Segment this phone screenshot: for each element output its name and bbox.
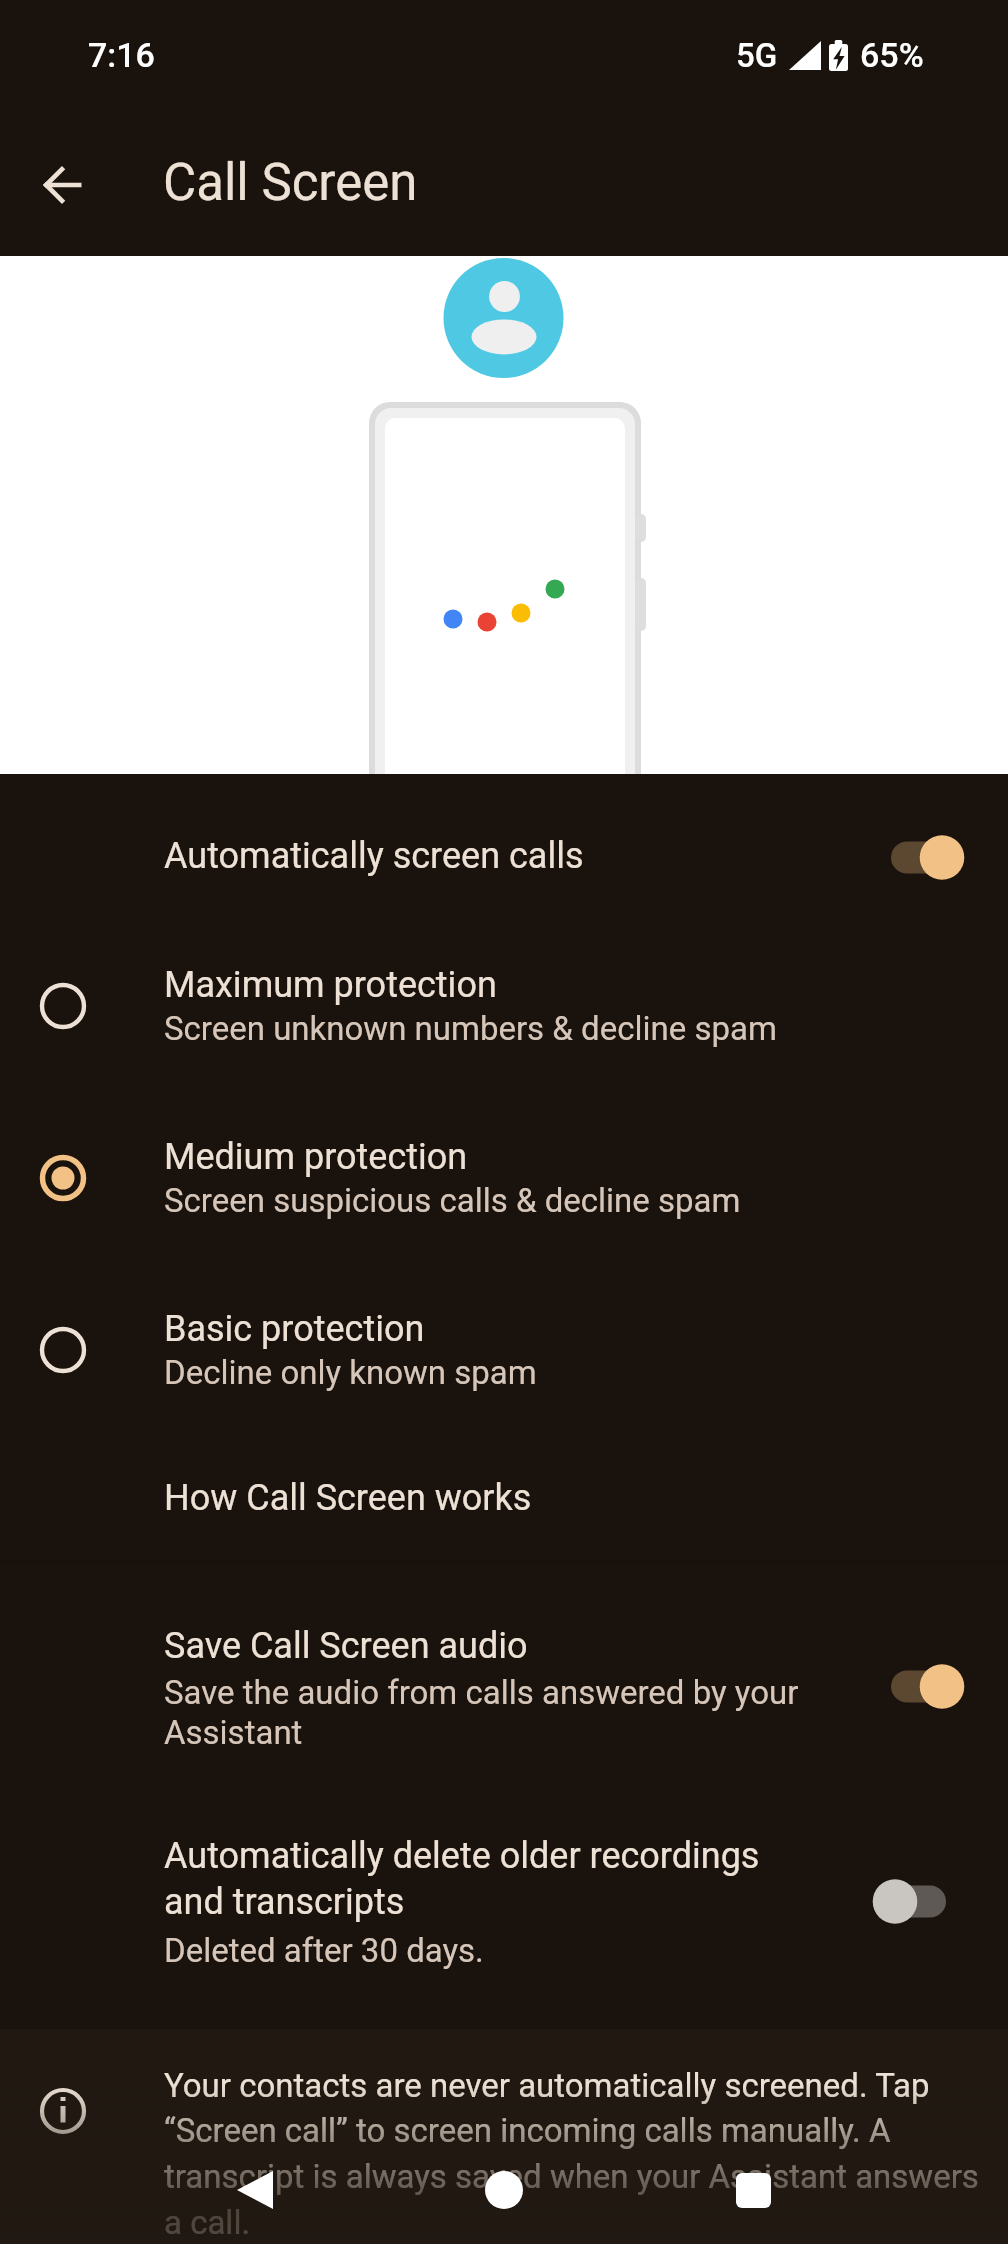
button[interactable]: Maximum protection (0, 938, 1008, 1098)
button[interactable]: Automatically delete older recordings an… (0, 1794, 1008, 2004)
button[interactable]: Back (18, 140, 108, 230)
staticText: Save Call Screen audio (164, 1625, 528, 1667)
button[interactable]: Recent apps (698, 2135, 808, 2244)
staticText: Save the audio from calls answered by yo… (164, 1673, 824, 1752)
button[interactable]: Back (200, 2135, 310, 2244)
button[interactable]: Medium protection (0, 1110, 1008, 1270)
staticText: How Call Screen works (164, 1477, 532, 1519)
staticText: Call Screen (163, 153, 418, 213)
button[interactable]: Automatically screen calls (0, 794, 1008, 918)
staticText: 7:16 (88, 35, 155, 75)
staticText: Basic protection (164, 1308, 425, 1350)
button[interactable]: Off (862, 1879, 962, 1924)
staticText: Medium protection (164, 1136, 468, 1178)
button[interactable]: On (879, 1664, 979, 1709)
staticText: Screen unknown numbers & decline spam (164, 1009, 777, 1048)
staticText: Screen suspicious calls & decline spam (164, 1181, 741, 1220)
staticText: Automatically screen calls (164, 835, 584, 877)
button[interactable]: How Call Screen works (0, 1436, 1008, 1560)
staticText: Deleted after 30 days. (164, 1931, 484, 1970)
staticText: 5G (736, 36, 778, 75)
staticText: Automatically delete older recordings an… (164, 1835, 804, 1922)
staticText: 65% (860, 35, 924, 75)
button[interactable]: Basic protection (0, 1282, 1008, 1442)
button[interactable]: Home (449, 2135, 559, 2244)
button[interactable]: Save Call Screen audio (0, 1584, 1008, 1784)
staticText: Your contacts are never automatically sc… (164, 2066, 984, 2242)
staticText: Decline only known spam (164, 1353, 537, 1392)
staticText: Maximum protection (164, 964, 497, 1006)
button[interactable]: On (879, 835, 979, 880)
